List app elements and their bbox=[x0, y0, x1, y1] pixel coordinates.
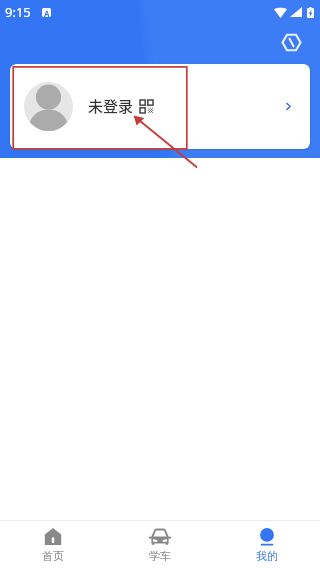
button[interactable]: Scan code bbox=[278, 29, 305, 56]
button[interactable]: 我的 bbox=[213, 521, 320, 568]
staticText: 未登录 bbox=[88, 95, 134, 117]
staticText: 我的 bbox=[256, 549, 278, 563]
staticText: 9:15 bbox=[5, 3, 31, 21]
button[interactable]: 首页 bbox=[0, 521, 106, 568]
staticText: 首页 bbox=[42, 549, 64, 563]
button[interactable]: 学车 bbox=[106, 521, 213, 568]
staticText: 学车 bbox=[149, 549, 171, 563]
staticText: A bbox=[44, 8, 50, 17]
button[interactable]: 未登录 bbox=[10, 64, 310, 149]
